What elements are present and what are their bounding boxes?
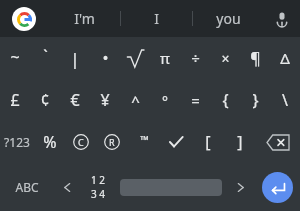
staticText: 1 2 (91, 173, 106, 187)
button[interactable]: [ (192, 121, 224, 163)
staticText: ` (43, 45, 48, 67)
button[interactable]: ?123 (0, 121, 34, 163)
button[interactable]: Enter (262, 172, 293, 203)
staticText: you (216, 9, 241, 28)
button[interactable]: Voice input (264, 0, 300, 37)
button[interactable]: Δ (270, 37, 300, 79)
staticText: C (78, 136, 84, 148)
staticText: ¢ (40, 89, 50, 111)
staticText: | (70, 47, 80, 70)
button[interactable]: Next page (226, 163, 254, 211)
button[interactable]: ÷ (180, 37, 210, 79)
button[interactable]: ~ (0, 37, 30, 79)
button[interactable]: × (210, 37, 240, 79)
button[interactable]: π (150, 37, 180, 79)
staticText: × (221, 49, 230, 68)
staticText: ¥ (100, 89, 110, 111)
staticText: { (222, 89, 229, 111)
staticText: 3 4 (91, 187, 106, 201)
button[interactable]: ¶ (240, 37, 270, 79)
staticText: \ (282, 89, 288, 111)
button[interactable]: Copyright (65, 121, 96, 163)
button[interactable]: ¢ (30, 79, 60, 121)
staticText: ° (162, 92, 168, 111)
button[interactable]: | (60, 37, 90, 79)
button[interactable]: ` (30, 37, 60, 79)
button[interactable]: £ (0, 79, 30, 121)
staticText: £ (10, 89, 20, 111)
button[interactable]: Backspace (256, 121, 300, 163)
staticText: ^ (131, 91, 140, 111)
staticText: ÷ (191, 48, 200, 68)
button[interactable]: I (121, 0, 192, 37)
button[interactable]: ABC (0, 163, 54, 211)
button[interactable]: you (193, 0, 264, 37)
staticText: ~ (10, 46, 20, 68)
button[interactable]: ^ (120, 79, 150, 121)
button[interactable]: { (210, 79, 240, 121)
staticText: ] (237, 131, 243, 153)
button[interactable]: ° (150, 79, 180, 121)
staticText: I (154, 9, 159, 28)
button[interactable]: • (90, 37, 120, 79)
staticText: ™ (140, 132, 149, 147)
staticText: Δ (280, 48, 290, 68)
button[interactable]: \ (270, 79, 300, 121)
staticText: ABC (15, 179, 39, 195)
button[interactable]: % (34, 121, 65, 163)
button[interactable]: ] (224, 121, 256, 163)
button[interactable]: ¥ (90, 79, 120, 121)
staticText: % (43, 131, 57, 153)
staticText: = (191, 90, 200, 110)
button[interactable]: Check mark (160, 121, 192, 163)
button[interactable]: = (180, 79, 210, 121)
staticText: € (70, 89, 80, 111)
button[interactable]: Google (0, 0, 48, 37)
button[interactable]: ™ (128, 121, 160, 163)
staticText: • (102, 47, 109, 69)
staticText: [ (205, 131, 211, 153)
staticText: I'm (74, 9, 95, 28)
staticText: R (109, 136, 115, 148)
button[interactable]: Numbers (80, 163, 116, 211)
button[interactable]: } (240, 79, 270, 121)
button[interactable]: € (60, 79, 90, 121)
staticText: } (252, 89, 259, 111)
button[interactable]: Registered (96, 121, 128, 163)
button[interactable]: Previous page (54, 163, 80, 211)
button[interactable]: Square root (120, 37, 150, 79)
staticText: π (160, 48, 170, 68)
staticText: ¶ (250, 47, 261, 69)
button[interactable]: I'm (48, 0, 120, 37)
staticText: ?123 (4, 134, 30, 150)
